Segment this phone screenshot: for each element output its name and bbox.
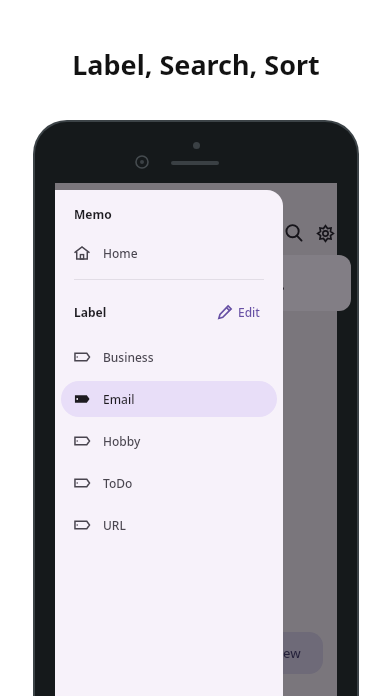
button[interactable]: ToDo <box>61 465 277 501</box>
button[interactable]: New <box>251 632 323 674</box>
button[interactable]: Business <box>61 339 277 375</box>
staticText: Memo <box>74 206 112 222</box>
button[interactable]: URL <box>61 507 277 543</box>
button[interactable] <box>255 255 351 311</box>
staticText: Label <box>74 304 107 320</box>
staticText: Edit <box>238 304 260 320</box>
button[interactable]: Settings <box>311 219 339 247</box>
staticText: New <box>273 644 301 662</box>
button[interactable]: Hobby <box>61 423 277 459</box>
staticText: URL <box>103 517 126 533</box>
staticText: Label, Search, Sort <box>0 46 392 83</box>
staticText: Hobby <box>103 433 141 449</box>
button[interactable]: Edit <box>214 300 264 324</box>
button[interactable]: Email <box>61 381 277 417</box>
staticText: Home <box>103 245 138 261</box>
button[interactable]: Search <box>280 219 308 247</box>
staticText: Business <box>103 349 154 365</box>
button[interactable]: Home <box>61 237 277 269</box>
staticText: ToDo <box>103 475 133 491</box>
staticText: Email <box>103 391 135 407</box>
